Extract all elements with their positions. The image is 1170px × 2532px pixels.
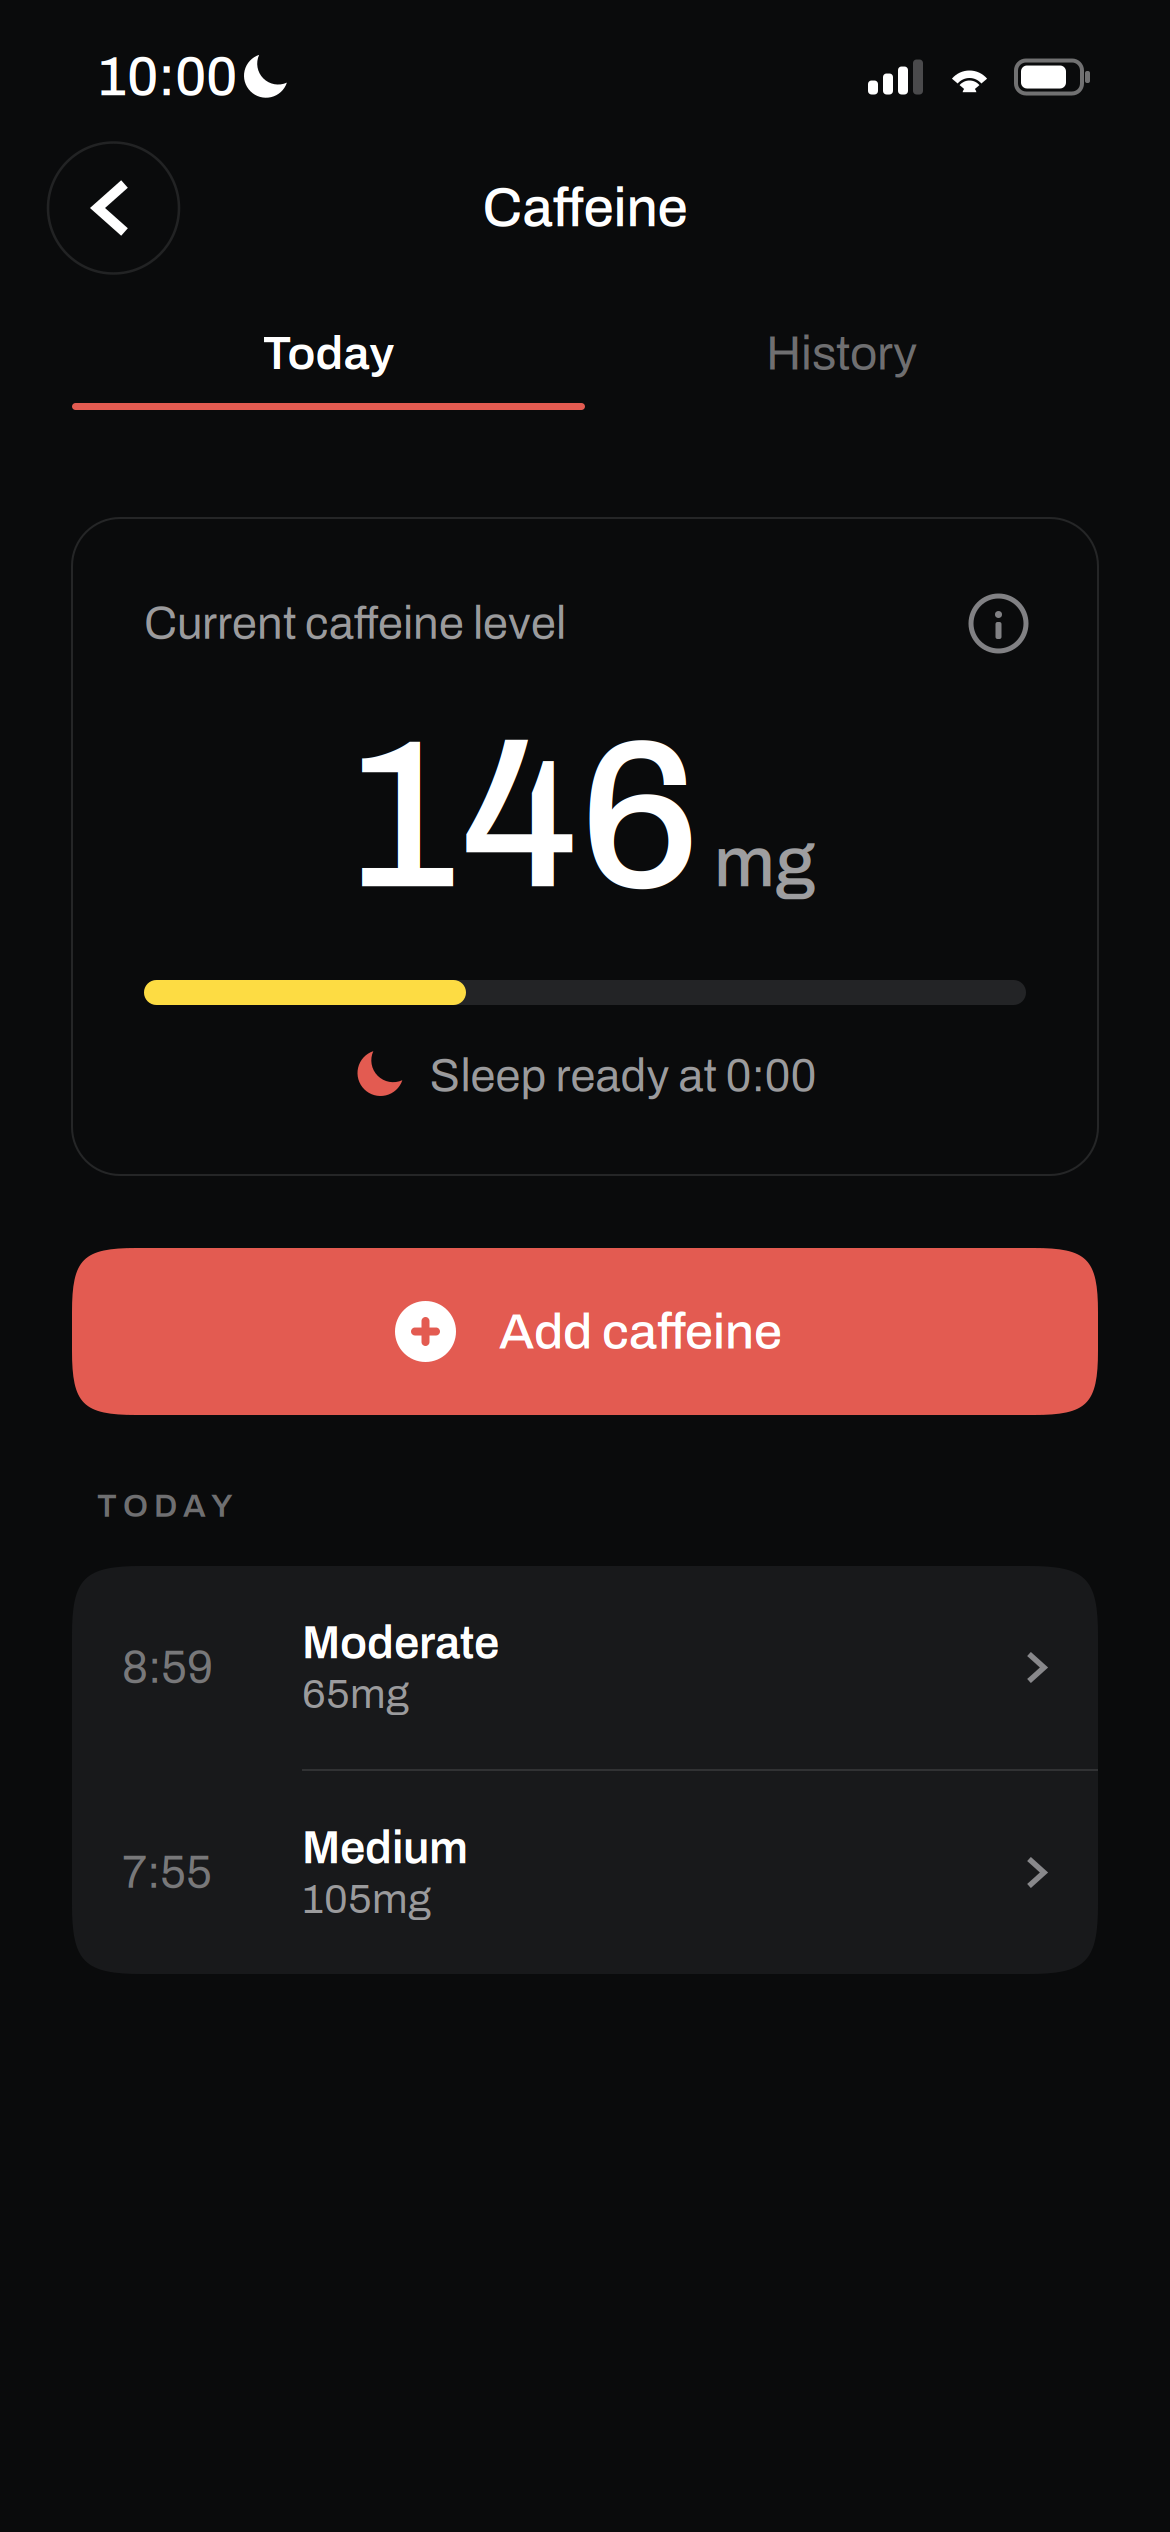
staticText: 105mg [302,1877,431,1922]
staticText: Current caffeine level [144,599,566,648]
button[interactable]: 7:55 [72,1771,1098,1974]
staticText: 7:55 [122,1848,212,1897]
button[interactable]: Add caffeine [72,1248,1098,1415]
button[interactable]: 8:59 [72,1566,1098,1769]
button[interactable]: Back [48,142,179,273]
button[interactable]: Info about caffeine level [971,596,1026,651]
staticText: 10:00 [97,47,237,107]
staticText: 8:59 [122,1643,213,1692]
staticText: Caffeine [482,178,687,238]
staticText: 146 [345,701,700,931]
staticText: Add caffeine [499,1304,782,1359]
staticText: Moderate [302,1618,499,1668]
staticText: Today [262,328,394,379]
staticText: Medium [302,1823,468,1873]
staticText: mg [714,824,815,901]
staticText: T O D A Y [97,1489,233,1523]
staticText: Sleep ready at 0:00 [429,1051,816,1101]
button[interactable]: History [585,304,1098,410]
staticText: 65mg [302,1672,409,1717]
staticText: History [766,327,917,380]
button[interactable]: Today [72,304,585,410]
